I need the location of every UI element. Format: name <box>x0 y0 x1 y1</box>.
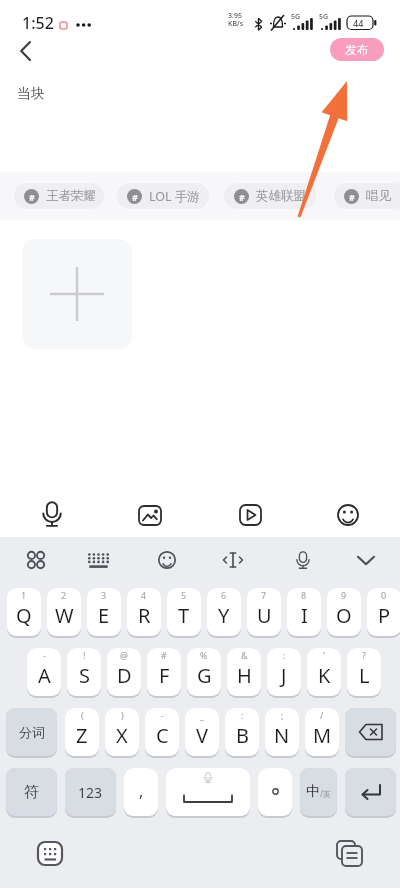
button[interactable] <box>258 768 292 816</box>
staticText: /英 <box>320 788 331 799</box>
staticText: 3 <box>101 589 107 601</box>
button[interactable]: 8 <box>287 588 321 636</box>
button[interactable] <box>324 490 372 537</box>
button[interactable]: : <box>225 708 259 756</box>
button[interactable]: - <box>27 648 61 696</box>
button[interactable]: ' <box>307 648 341 696</box>
staticText: A <box>38 662 51 689</box>
button[interactable]: 0 <box>367 588 400 636</box>
button[interactable]: 7 <box>247 588 281 636</box>
staticText: 0 <box>381 589 387 601</box>
staticText: : <box>241 709 244 721</box>
button[interactable]: / <box>305 708 339 756</box>
staticText: 5 <box>181 589 187 601</box>
staticText: - <box>161 709 164 721</box>
button[interactable] <box>226 490 274 537</box>
button[interactable]: & <box>227 648 261 696</box>
button[interactable] <box>345 708 396 756</box>
button[interactable]: # <box>147 648 181 696</box>
button[interactable] <box>8 36 42 66</box>
button[interactable] <box>166 768 250 816</box>
button[interactable]: 4 <box>127 588 161 636</box>
staticText: 中 <box>306 783 320 801</box>
button[interactable]: 3 <box>87 588 121 636</box>
button[interactable]: 9 <box>327 588 361 636</box>
button[interactable]: # <box>14 183 104 209</box>
staticText: 王者荣耀 <box>46 188 96 204</box>
button[interactable] <box>345 540 388 580</box>
staticText: & <box>241 649 248 661</box>
staticText: K <box>318 662 331 689</box>
button[interactable]: # <box>334 183 400 209</box>
staticText: 唱见 <box>366 188 391 204</box>
staticText: 5G <box>291 12 301 22</box>
staticText: 8 <box>301 589 307 601</box>
staticText: B <box>236 722 249 749</box>
button[interactable]: ? <box>347 648 381 696</box>
button[interactable] <box>330 834 370 874</box>
button[interactable]: 发布 <box>330 38 384 61</box>
staticText: I <box>301 602 308 629</box>
staticText: LOL 手游 <box>149 188 200 205</box>
button[interactable] <box>126 490 174 537</box>
staticText: 1:52 <box>22 12 54 34</box>
button[interactable]: # <box>224 183 316 209</box>
button[interactable]: 123 <box>65 768 116 816</box>
button[interactable]: - <box>145 708 179 756</box>
button[interactable]: 中 <box>300 768 337 816</box>
button[interactable]: @ <box>107 648 141 696</box>
staticText: Z <box>76 722 88 749</box>
button[interactable]: % <box>187 648 221 696</box>
button[interactable]: 2 <box>47 588 81 636</box>
staticText: G <box>197 662 212 689</box>
staticText: ( <box>81 709 84 721</box>
button[interactable] <box>30 834 70 874</box>
staticText: R <box>138 602 151 629</box>
staticText: Y <box>218 602 230 629</box>
staticText: T <box>178 602 190 629</box>
staticText: 9 <box>341 589 347 601</box>
staticText: U <box>257 602 272 629</box>
button[interactable] <box>79 540 122 580</box>
button[interactable]: , <box>124 768 158 816</box>
staticText: E <box>98 602 110 629</box>
button[interactable]: _ <box>185 708 219 756</box>
button[interactable]: ; <box>265 708 299 756</box>
staticText: - <box>43 649 46 661</box>
button[interactable] <box>28 490 76 537</box>
staticText: J <box>281 662 287 689</box>
staticText: 英雄联盟 <box>256 188 306 204</box>
button[interactable]: 6 <box>207 588 241 636</box>
button[interactable] <box>12 540 55 580</box>
button[interactable]: 分词 <box>6 708 57 756</box>
staticText: 分词 <box>19 724 45 740</box>
staticText: # <box>349 191 355 203</box>
button[interactable]: ( <box>65 708 99 756</box>
staticText: 当块 <box>17 85 45 103</box>
button[interactable] <box>145 540 188 580</box>
button[interactable]: 符 <box>6 768 57 816</box>
staticText: _ <box>200 709 204 721</box>
button[interactable]: # <box>117 183 209 209</box>
button[interactable]: ! <box>67 648 101 696</box>
staticText: X <box>116 722 128 749</box>
staticText: ) <box>121 709 124 721</box>
staticText: 7 <box>261 589 267 601</box>
staticText: % <box>200 649 208 661</box>
staticText: 44 <box>353 17 364 29</box>
staticText: ! <box>83 649 86 661</box>
staticText: S <box>79 662 90 689</box>
staticText: ? <box>362 649 366 661</box>
staticText: 发布 <box>345 42 369 57</box>
button[interactable] <box>278 540 321 580</box>
staticText: P <box>378 602 391 629</box>
button[interactable]: ) <box>105 708 139 756</box>
staticText: : <box>283 649 286 661</box>
button[interactable]: 1 <box>7 588 41 636</box>
staticText: V <box>196 722 208 749</box>
button[interactable] <box>22 239 132 349</box>
button[interactable] <box>345 768 396 816</box>
button[interactable]: 5 <box>167 588 201 636</box>
button[interactable] <box>212 540 255 580</box>
button[interactable]: : <box>267 648 301 696</box>
